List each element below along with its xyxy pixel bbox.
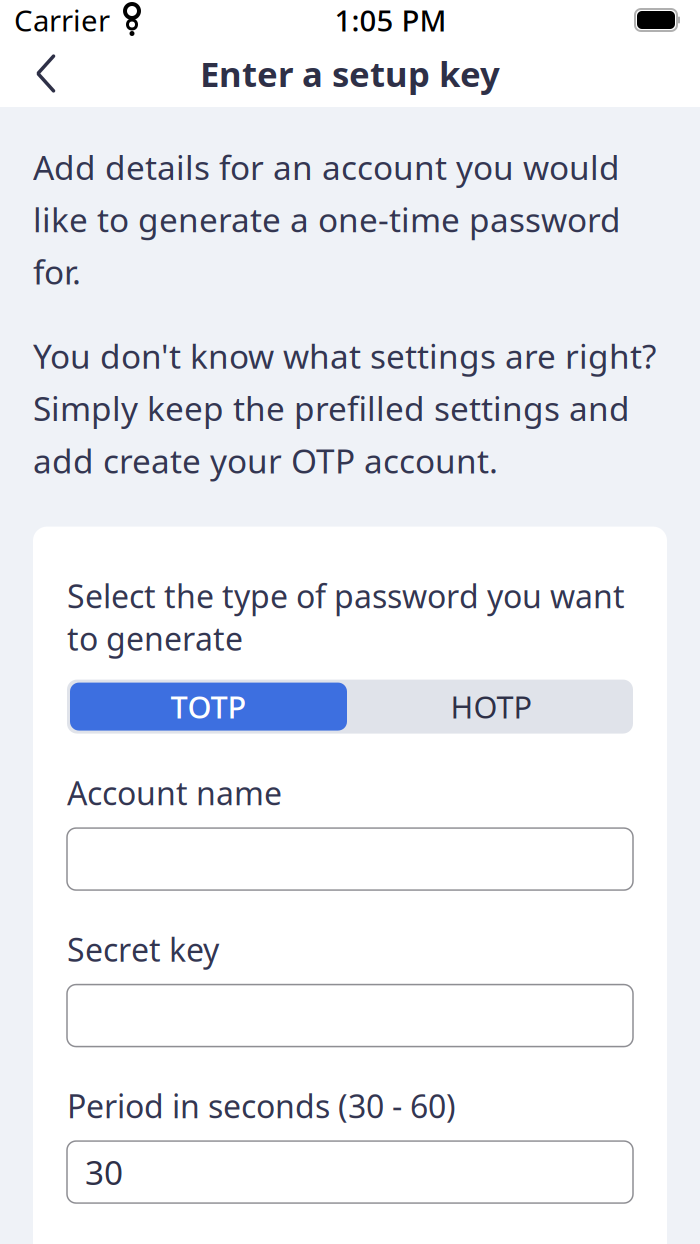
- button[interactable]: TOTP: [67, 680, 350, 734]
- staticText: Select the type of password you want to …: [67, 575, 625, 660]
- button[interactable]: Back: [14, 43, 78, 103]
- staticText: HOTP: [450, 686, 532, 727]
- staticText: 1:05 PM: [334, 0, 446, 39]
- staticText: Add details for an account you would lik…: [33, 145, 621, 294]
- staticText: Carrier: [14, 0, 110, 39]
- button[interactable]: [67, 828, 633, 890]
- staticText: Period in seconds (30 - 60): [67, 1085, 456, 1127]
- staticText: Enter a setup key: [200, 50, 500, 96]
- button[interactable]: 30: [67, 1141, 633, 1203]
- button[interactable]: [67, 985, 633, 1047]
- staticText: 30: [85, 1150, 123, 1194]
- staticText: TOTP: [170, 686, 246, 727]
- staticText: Account name: [67, 772, 282, 814]
- button[interactable]: HOTP: [350, 680, 633, 734]
- staticText: You don't know what settings are right? …: [33, 334, 656, 483]
- staticText: Secret key: [67, 928, 219, 971]
